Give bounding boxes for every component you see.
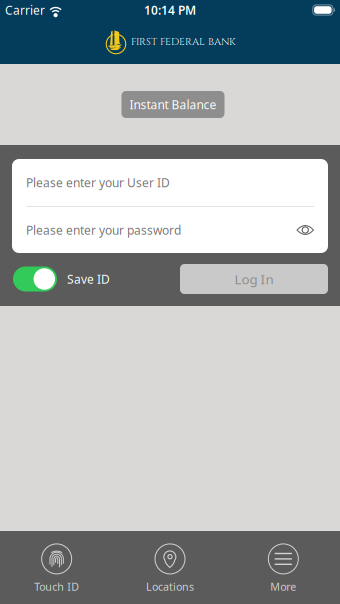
button[interactable]: Log In: [180, 264, 328, 294]
staticText: More: [270, 579, 296, 594]
staticText: FIRST FEDERAL BANK: [131, 35, 236, 49]
staticText: Locations: [146, 579, 194, 594]
staticText: Please enter your password: [26, 222, 181, 238]
staticText: Please enter your User ID: [26, 174, 170, 190]
button[interactable]: Show password: [290, 219, 314, 241]
button[interactable]: More: [227, 531, 340, 604]
button[interactable]: Touch ID: [0, 531, 113, 604]
staticText: Instant Balance: [129, 96, 216, 112]
staticText: Save ID: [67, 271, 110, 287]
staticText: Log In: [234, 270, 273, 288]
button[interactable]: Locations: [113, 531, 227, 604]
staticText: Carrier: [5, 2, 45, 18]
staticText: Touch ID: [34, 579, 79, 594]
staticText: 10:14 PM: [144, 2, 196, 18]
button[interactable]: Save ID: [13, 266, 110, 291]
button[interactable]: Instant Balance: [121, 91, 224, 118]
